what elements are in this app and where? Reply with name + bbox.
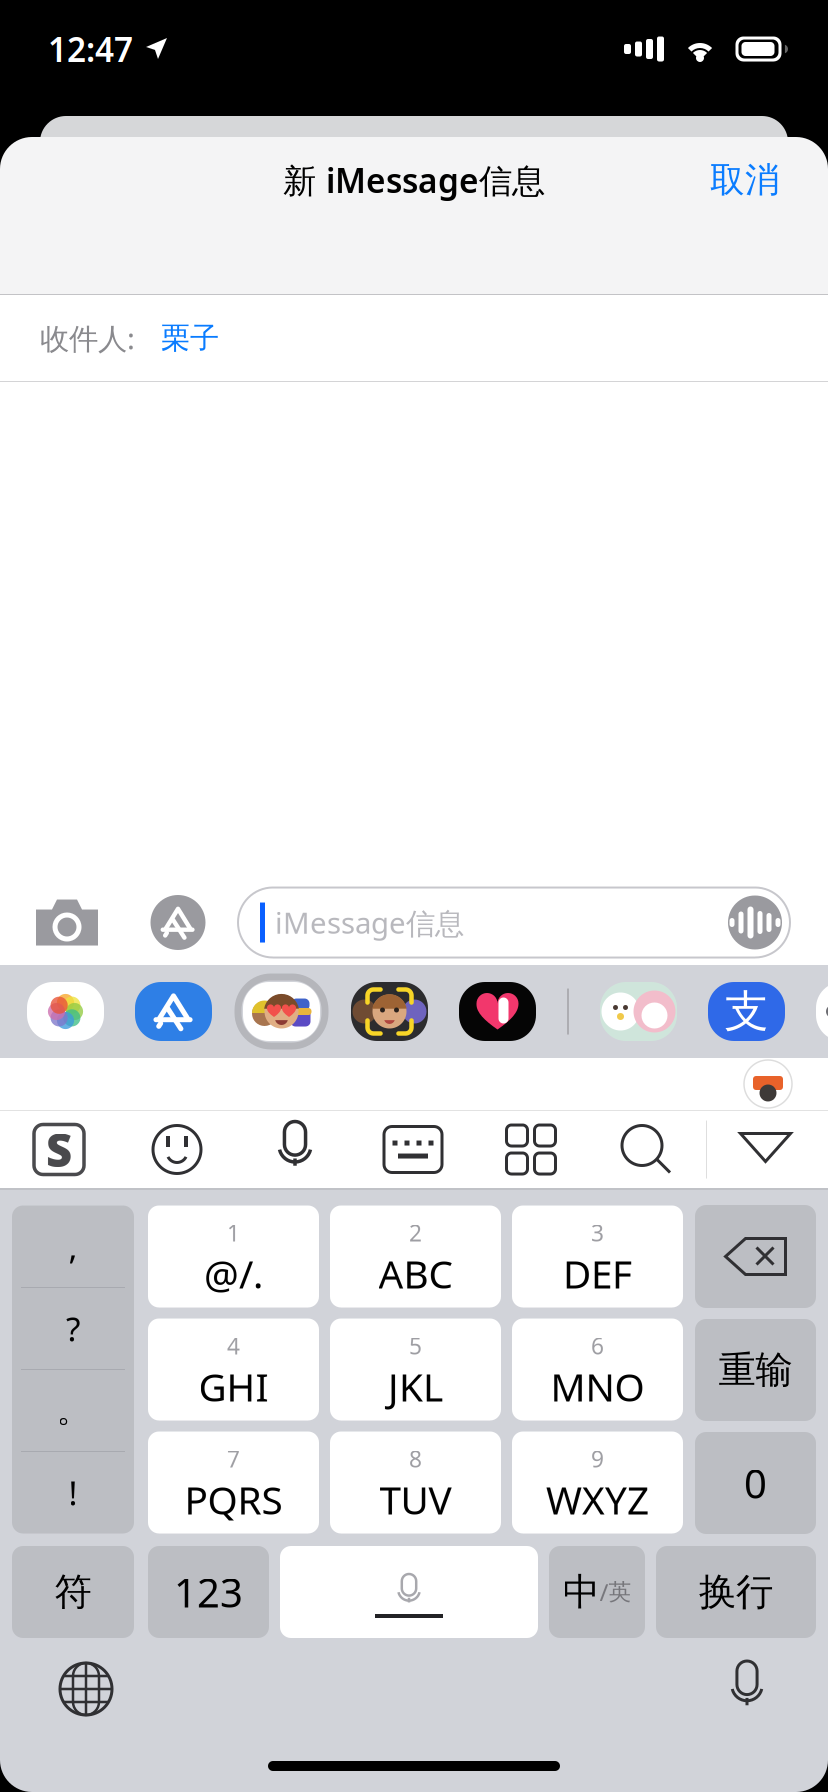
button[interactable]: Emoji <box>118 1111 236 1188</box>
button[interactable]: Dictation <box>726 1661 768 1717</box>
staticText: ? <box>66 1306 80 1351</box>
staticText: 2 <box>409 1218 422 1248</box>
button[interactable]: More apps <box>816 982 828 1041</box>
button[interactable]: App Store <box>135 982 212 1041</box>
staticText: 收件人: <box>40 318 135 357</box>
button[interactable]: 9 <box>512 1431 683 1533</box>
staticText: 6 <box>591 1331 604 1361</box>
staticText: 1 <box>227 1218 240 1248</box>
staticText: 0 <box>744 1456 767 1509</box>
staticText: 栗子 <box>161 320 219 356</box>
button[interactable]: Search <box>590 1111 706 1188</box>
staticText: GHI <box>198 1361 268 1412</box>
staticText: 7 <box>227 1444 240 1474</box>
button[interactable]: 取消 <box>688 143 802 217</box>
staticText: 换行 <box>699 1569 773 1615</box>
staticText: iMessage信息 <box>275 903 464 942</box>
button[interactable]: 4 <box>148 1318 319 1420</box>
button[interactable]: Sogou menu <box>0 1111 118 1188</box>
staticText: 英 <box>608 1578 631 1606</box>
button[interactable]: , <box>12 1206 134 1287</box>
button[interactable]: 重输 <box>695 1319 816 1421</box>
button[interactable]: Delete <box>695 1205 816 1308</box>
staticText: DEF <box>563 1248 632 1299</box>
staticText: @/. <box>204 1248 263 1299</box>
button[interactable]: 。 <box>12 1370 134 1451</box>
button[interactable]: Camera <box>26 890 108 954</box>
button[interactable]: 中 <box>549 1546 645 1638</box>
button[interactable]: ? <box>12 1288 134 1369</box>
staticText: PQRS <box>184 1474 282 1525</box>
button[interactable]: 7 <box>148 1431 319 1533</box>
staticText: ! <box>68 1470 77 1515</box>
button[interactable]: Memoji stickers <box>243 982 320 1041</box>
staticText: 中 <box>562 1569 599 1615</box>
button[interactable]: 0 <box>695 1432 816 1534</box>
staticText: TUV <box>379 1474 451 1525</box>
staticText: 新 iMessage信息 <box>283 158 545 202</box>
button[interactable]: Space <box>280 1546 538 1638</box>
button[interactable]: 换行 <box>656 1546 816 1638</box>
button[interactable]: More functions <box>472 1111 590 1188</box>
button[interactable]: 收件人: <box>0 295 828 381</box>
button[interactable]: 123 <box>148 1546 269 1638</box>
button[interactable]: Keyboard layout <box>354 1111 472 1188</box>
button[interactable]: Switch keyboard <box>58 1661 114 1717</box>
button[interactable]: ! <box>12 1452 134 1533</box>
staticText: 9 <box>591 1444 604 1474</box>
staticText: 12:47 <box>48 27 133 71</box>
button[interactable]: 6 <box>512 1318 683 1420</box>
staticText: 符 <box>54 1569 91 1615</box>
staticText: 3 <box>591 1218 604 1248</box>
button[interactable]: Fitness <box>459 982 536 1041</box>
button[interactable]: 符 <box>12 1546 134 1638</box>
button[interactable]: Animoji <box>351 982 428 1041</box>
button[interactable]: 5 <box>330 1318 501 1420</box>
button[interactable]: Audio message <box>728 895 782 949</box>
button[interactable]: iMessage apps <box>140 889 216 956</box>
staticText: 4 <box>227 1331 240 1361</box>
button[interactable]: Voice input <box>236 1111 354 1188</box>
staticText: 重输 <box>718 1347 792 1393</box>
button[interactable]: Alipay <box>708 982 785 1041</box>
staticText: WXYZ <box>546 1474 649 1525</box>
staticText: ABC <box>378 1248 452 1299</box>
staticText: S <box>46 1119 72 1180</box>
button[interactable]: 1 <box>148 1205 319 1307</box>
staticText: , <box>68 1224 77 1269</box>
staticText: 。 <box>56 1390 89 1431</box>
button[interactable]: 2 <box>330 1205 501 1307</box>
button[interactable]: Hide keyboard <box>707 1111 824 1188</box>
staticText: JKL <box>388 1361 443 1412</box>
staticText: MNO <box>550 1361 644 1412</box>
button[interactable]: Photos <box>27 982 104 1041</box>
staticText: 支 <box>724 984 768 1038</box>
staticText: 5 <box>409 1331 422 1361</box>
staticText: 8 <box>409 1444 422 1474</box>
button[interactable]: Sticker pack <box>600 982 677 1041</box>
button[interactable]: 8 <box>330 1431 501 1533</box>
staticText: 123 <box>174 1565 243 1618</box>
button[interactable]: 3 <box>512 1205 683 1307</box>
staticText: 取消 <box>710 159 780 201</box>
staticText: / <box>599 1576 608 1608</box>
